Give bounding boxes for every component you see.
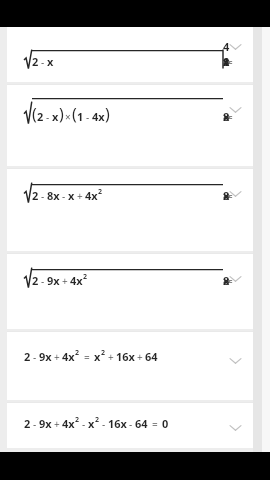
button[interactable]: Expand step [223, 35, 247, 59]
staticText: x [88, 416, 95, 431]
staticText: 2 [24, 416, 31, 431]
staticText: 2 [32, 188, 39, 203]
staticText: - [41, 189, 45, 203]
staticText: ( [72, 103, 77, 125]
staticText: 4x [92, 109, 105, 124]
staticText: - [86, 110, 90, 124]
staticText: - [82, 417, 86, 431]
staticText: x [52, 109, 59, 124]
staticText: - [62, 189, 66, 203]
button[interactable]: 2 [7, 27, 253, 82]
staticText: + [77, 189, 83, 203]
staticText: 2 [83, 272, 88, 282]
staticText: 2 [95, 415, 100, 425]
staticText: 4x [70, 273, 83, 288]
staticText: = [84, 350, 90, 364]
staticText: - [102, 417, 106, 431]
staticText: 2 [98, 187, 103, 197]
staticText: 4x [85, 188, 98, 203]
staticText: 8x [47, 188, 60, 203]
staticText: 2 [32, 273, 39, 288]
button[interactable]: 2 [7, 332, 253, 400]
staticText: + [137, 350, 143, 364]
staticText: 4x [62, 416, 75, 431]
staticText: 2 [75, 348, 80, 358]
staticText: ( [32, 103, 37, 125]
staticText: 9x [47, 273, 60, 288]
button[interactable]: Expand step [223, 98, 247, 122]
staticText: x [68, 188, 75, 203]
staticText: 9x [39, 349, 52, 364]
button[interactable]: Expand step [223, 267, 247, 291]
staticText: + [54, 350, 60, 364]
button[interactable]: 2 [7, 254, 253, 329]
staticText: 2 [32, 54, 39, 69]
staticText: 2 [37, 109, 44, 124]
staticText: 4x [62, 349, 75, 364]
staticText: x [94, 349, 101, 364]
staticText: 2 [101, 348, 106, 358]
staticText: + [108, 350, 114, 364]
staticText: ) [105, 103, 110, 125]
staticText: - [41, 274, 45, 288]
staticText: - [129, 417, 133, 431]
staticText: + [54, 417, 60, 431]
staticText: ) [59, 103, 64, 125]
staticText: 0 [162, 416, 169, 431]
staticText: + [62, 274, 68, 288]
staticText: x [47, 54, 54, 69]
button[interactable]: Expand step [223, 349, 247, 373]
staticText: - [33, 417, 37, 431]
staticText: 9x [39, 416, 52, 431]
staticText: × [65, 110, 71, 124]
button[interactable]: Expand step [223, 416, 247, 440]
staticText: - [46, 110, 50, 124]
button[interactable]: Expand step [223, 182, 247, 206]
staticText: 16x [116, 349, 135, 364]
staticText: = [152, 417, 158, 431]
staticText: 16x [108, 416, 127, 431]
staticText: 2 [24, 349, 31, 364]
button[interactable]: 2 [7, 169, 253, 251]
staticText: - [33, 350, 37, 364]
staticText: 64 [145, 349, 158, 364]
staticText: 1 [77, 109, 84, 124]
button[interactable]: 2 [7, 403, 253, 448]
staticText: - [41, 55, 45, 69]
staticText: 2 [75, 415, 80, 425]
staticText: 64 [135, 416, 148, 431]
button[interactable]: ( [7, 85, 253, 166]
